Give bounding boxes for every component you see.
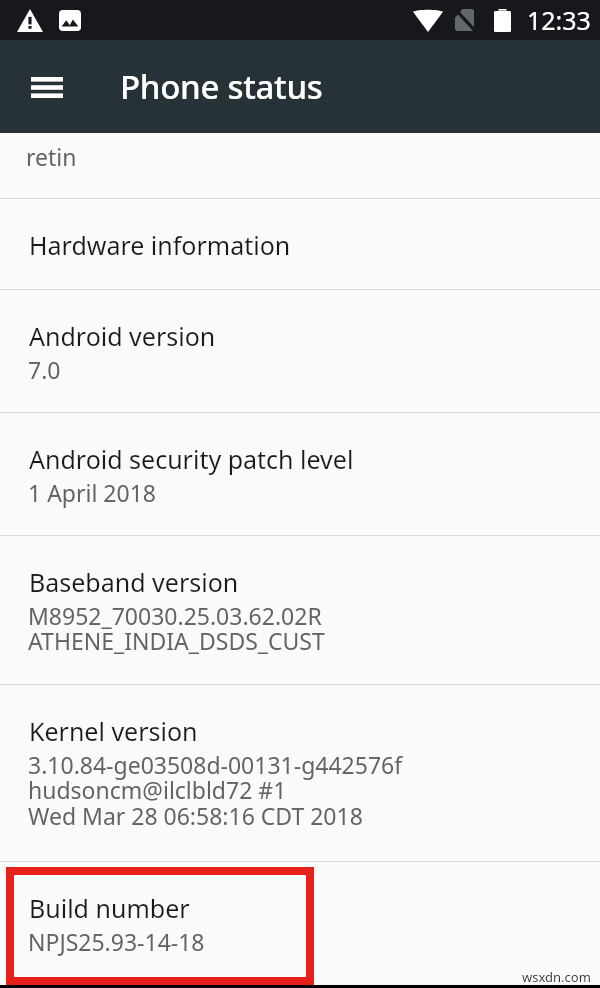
- staticText: M8952_70030.25.03.62.02R ATHENE_INDIA_DS…: [28, 600, 325, 657]
- staticText: Hardware information: [29, 228, 291, 262]
- staticText: Baseband version: [29, 565, 239, 599]
- button[interactable]: Open navigation menu: [19, 59, 75, 115]
- staticText: Phone status: [120, 64, 323, 109]
- button[interactable]: Build number: [0, 862, 600, 957]
- staticText: 12:33: [527, 3, 591, 37]
- button[interactable]: Android security patch level: [0, 413, 600, 535]
- button[interactable]: Android version: [0, 290, 600, 412]
- staticText: 1 April 2018: [28, 477, 156, 508]
- staticText: Build number: [29, 891, 190, 925]
- staticText: Android security patch level: [29, 442, 354, 476]
- staticText: wsxdn.com: [522, 968, 591, 986]
- staticText: retin: [26, 141, 77, 172]
- staticText: NPJS25.93-14-18: [28, 926, 205, 957]
- staticText: 7.0: [28, 354, 61, 385]
- button[interactable]: Baseband version: [0, 536, 600, 684]
- staticText: Kernel version: [29, 714, 198, 748]
- staticText: Android version: [29, 319, 216, 353]
- button[interactable]: retin: [0, 133, 600, 198]
- staticText: 3.10.84-ge03508d-00131-g442576f hudsoncm…: [28, 749, 403, 832]
- button[interactable]: Hardware information: [0, 199, 600, 289]
- button[interactable]: Kernel version: [0, 685, 600, 861]
